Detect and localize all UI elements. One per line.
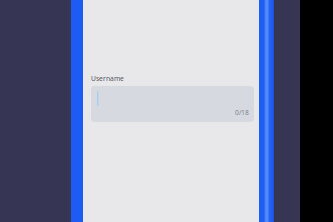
button[interactable]: Username (91, 86, 254, 122)
staticText: Username (91, 74, 124, 83)
staticText: 0/18 (235, 108, 249, 117)
